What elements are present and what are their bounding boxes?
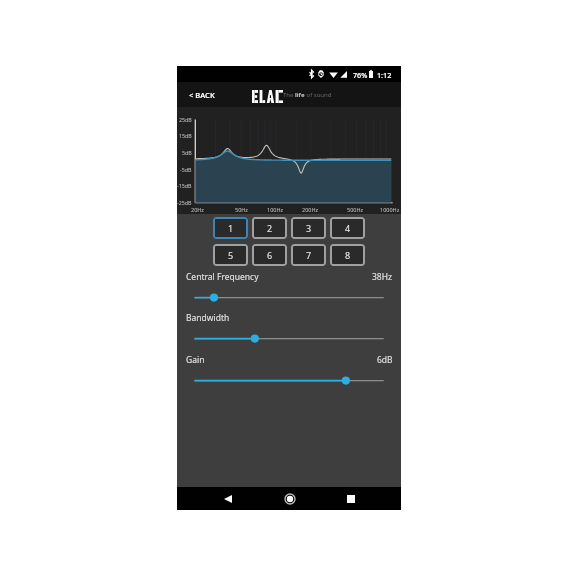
button[interactable]: 6 bbox=[252, 244, 287, 266]
button[interactable]: 8 bbox=[330, 244, 365, 266]
staticText: 7 bbox=[306, 249, 312, 261]
staticText: Central Frequency bbox=[186, 271, 259, 283]
staticText: 500Hz bbox=[347, 206, 364, 213]
staticText: 2 bbox=[267, 222, 273, 234]
button[interactable] bbox=[177, 366, 401, 388]
staticText: < BACK bbox=[189, 90, 215, 100]
staticText: 8 bbox=[345, 249, 351, 261]
button[interactable]: 5 bbox=[213, 244, 248, 266]
staticText: 1 bbox=[228, 222, 234, 234]
staticText: The bbox=[283, 91, 295, 99]
button[interactable] bbox=[177, 283, 401, 305]
staticText: Bandwidth bbox=[186, 312, 230, 324]
staticText: 5dB bbox=[182, 149, 192, 156]
staticText: Gain bbox=[186, 354, 205, 366]
staticText: 3 bbox=[306, 222, 312, 234]
staticText: 15dB bbox=[179, 132, 192, 139]
button[interactable]: Recent apps bbox=[339, 487, 363, 510]
staticText: 100Hz bbox=[267, 206, 284, 213]
staticText: 6 bbox=[267, 249, 273, 261]
button[interactable]: Home bbox=[278, 487, 302, 510]
button[interactable]: 3 bbox=[291, 217, 326, 239]
button[interactable] bbox=[177, 324, 401, 346]
button[interactable]: 1 bbox=[213, 217, 248, 239]
staticText: 4 bbox=[345, 222, 351, 234]
staticText: life bbox=[295, 91, 305, 99]
staticText: 1:12 bbox=[377, 70, 392, 80]
staticText: -25dB bbox=[177, 199, 192, 206]
staticText: 5 bbox=[228, 249, 234, 261]
button[interactable]: Back bbox=[216, 487, 240, 510]
button[interactable]: 7 bbox=[291, 244, 326, 266]
staticText: 38Hz bbox=[372, 271, 393, 283]
staticText: 76% bbox=[353, 70, 368, 80]
staticText: 20Hz bbox=[191, 206, 204, 213]
staticText: 1000Hz bbox=[380, 206, 400, 213]
staticText: of sound bbox=[305, 91, 332, 99]
staticText: -15dB bbox=[177, 182, 192, 189]
staticText: 25dB bbox=[179, 116, 192, 123]
button[interactable]: < BACK bbox=[177, 85, 223, 105]
button[interactable]: 2 bbox=[252, 217, 287, 239]
staticText: 6dB bbox=[377, 354, 393, 366]
staticText: 50Hz bbox=[235, 206, 248, 213]
staticText: 200Hz bbox=[302, 206, 319, 213]
button[interactable]: 4 bbox=[330, 217, 365, 239]
staticText: -5dB bbox=[180, 166, 192, 173]
